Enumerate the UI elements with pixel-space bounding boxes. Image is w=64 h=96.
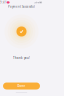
button[interactable]: Done [3, 82, 40, 89]
staticText: Payment Successful [8, 5, 35, 8]
staticText: Thank you! [13, 56, 30, 60]
staticText: 9:41 [0, 1, 7, 4]
staticText: Done [17, 84, 25, 88]
